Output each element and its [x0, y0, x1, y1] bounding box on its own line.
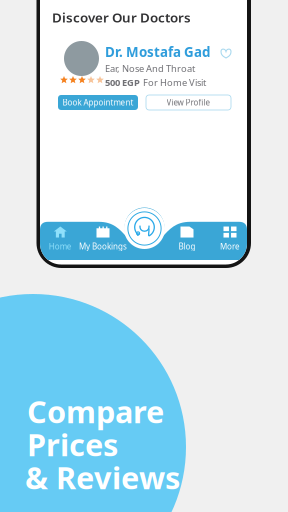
staticText: Blog	[178, 241, 195, 252]
staticText: More	[220, 241, 240, 252]
button[interactable]: Favourite	[218, 46, 234, 61]
staticText: Dr. Mostafa Gad	[105, 43, 210, 61]
staticText: For Home Visit	[143, 76, 206, 88]
button[interactable]: Book Appointment	[58, 95, 138, 110]
button[interactable]: Consult a doctor	[122, 206, 166, 250]
button[interactable]: Blog	[163, 226, 211, 252]
staticText: Home	[49, 241, 72, 252]
staticText: & Reviews	[25, 457, 180, 498]
staticText: My Bookings	[79, 241, 127, 252]
button[interactable]: View Profile	[146, 95, 231, 110]
staticText: Book Appointment	[62, 97, 133, 108]
staticText: Prices	[27, 424, 118, 465]
button[interactable]: Home	[36, 226, 84, 252]
staticText: Compare	[27, 391, 164, 432]
staticText: View Profile	[166, 97, 210, 108]
staticText: Ear, Nose And Throat	[105, 62, 195, 75]
button[interactable]: My Bookings	[79, 226, 127, 252]
staticText: Discover Our Doctors	[52, 8, 191, 26]
button[interactable]: More	[206, 226, 254, 252]
staticText: 500 EGP	[105, 76, 140, 88]
